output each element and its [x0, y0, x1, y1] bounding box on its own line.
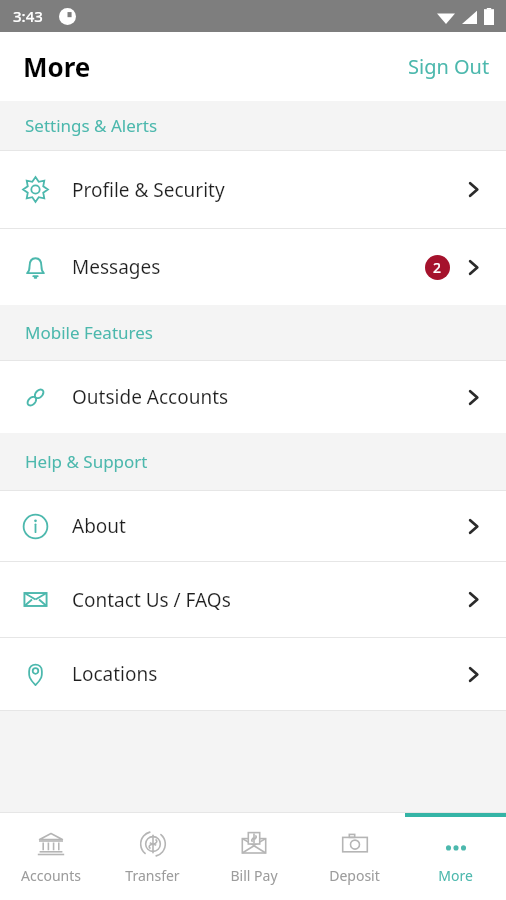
button[interactable]: Contact Us / FAQs [0, 562, 506, 637]
staticText: More [23, 49, 91, 84]
staticText: Contact Us / FAQs [72, 587, 231, 613]
button[interactable]: Outside Accounts [0, 361, 506, 433]
staticText: Help & Support [25, 450, 148, 473]
button[interactable]: About [0, 491, 506, 561]
staticText: Transfer [125, 866, 180, 885]
button[interactable]: More [405, 817, 506, 900]
staticText: Locations [72, 661, 158, 687]
staticText: 2 [433, 258, 442, 277]
button[interactable]: Messages [0, 229, 506, 305]
button[interactable]: Deposit [304, 817, 405, 900]
staticText: Profile & Security [72, 177, 225, 203]
button[interactable]: Accounts [0, 817, 102, 900]
staticText: About [72, 513, 126, 539]
staticText: Bill Pay [230, 866, 278, 885]
staticText: Accounts [21, 866, 81, 885]
staticText: Messages [72, 254, 161, 280]
button[interactable]: Bill Pay [203, 817, 304, 900]
staticText: More [438, 866, 473, 885]
staticText: Sign Out [408, 53, 490, 80]
staticText: 3:43 [13, 6, 43, 26]
button[interactable]: Sign Out [392, 39, 506, 94]
staticText: Deposit [329, 866, 380, 885]
button[interactable]: Locations [0, 638, 506, 710]
staticText: Settings & Alerts [25, 114, 158, 137]
button[interactable]: Transfer [102, 817, 203, 900]
staticText: Outside Accounts [72, 384, 229, 410]
staticText: Mobile Features [25, 321, 153, 344]
button[interactable]: Profile & Security [0, 151, 506, 228]
